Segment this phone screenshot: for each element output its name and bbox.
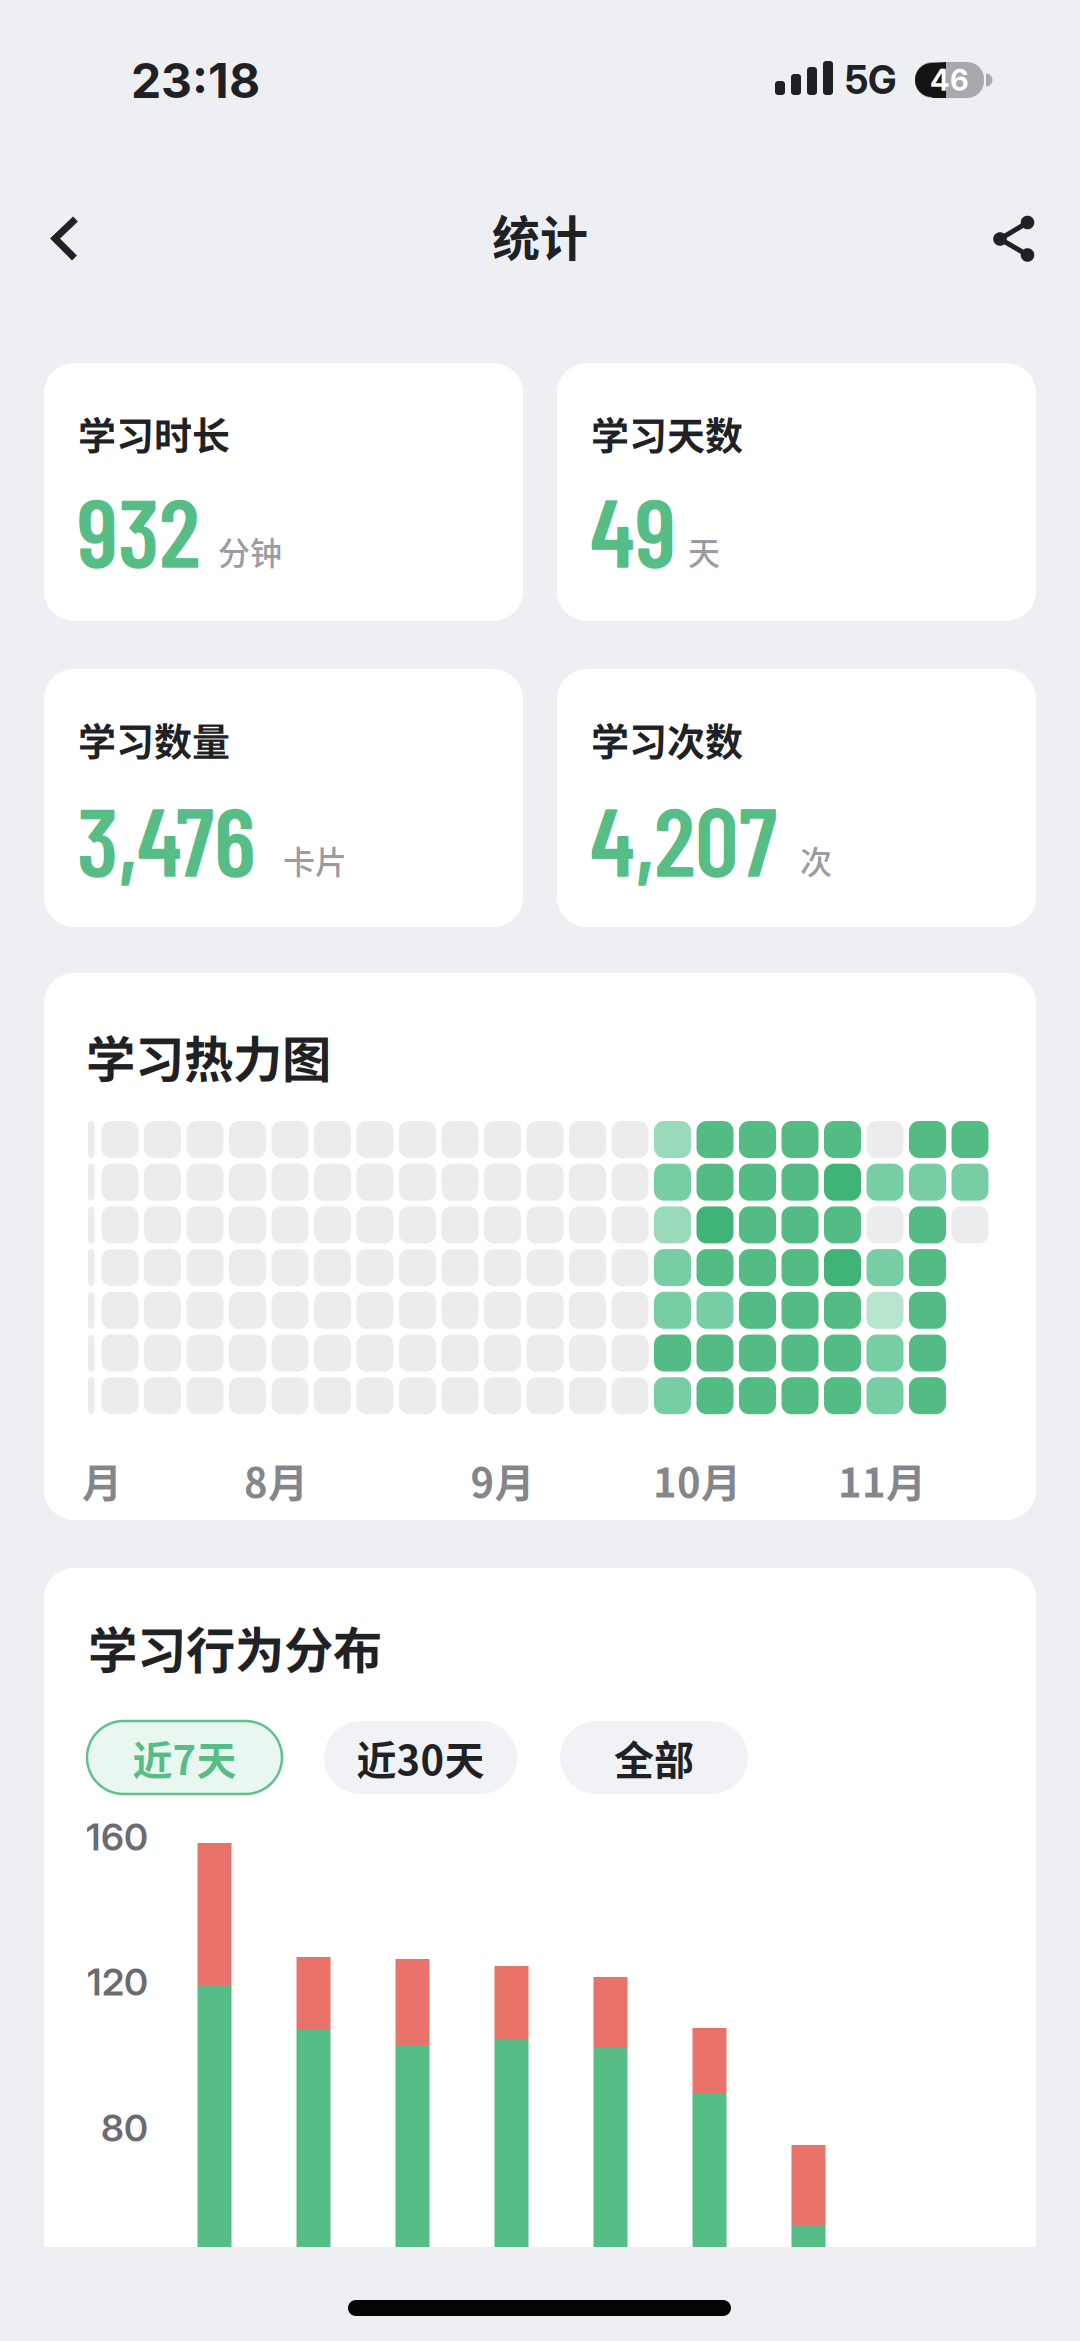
staticText: 3,476	[77, 780, 256, 896]
staticText: 学习热力图	[86, 1020, 331, 1092]
staticText: 8月	[244, 1451, 308, 1509]
button[interactable]: 全部	[560, 1721, 748, 1794]
staticText: 天	[688, 528, 720, 574]
button[interactable]: Back	[35, 199, 115, 279]
staticText: 5G	[845, 57, 897, 103]
staticText: 学习时长	[78, 405, 230, 460]
staticText: 4,207	[590, 780, 777, 896]
staticText: 23:18	[131, 51, 260, 110]
staticText: 近30天	[356, 1728, 484, 1786]
button[interactable]: 近7天	[87, 1721, 282, 1794]
staticText: 月	[82, 1451, 122, 1509]
staticText: 932	[77, 471, 200, 587]
staticText: 学习天数	[591, 405, 743, 460]
staticText: 学习数量	[78, 711, 230, 766]
staticText: 学习次数	[591, 711, 743, 766]
staticText: 统计	[492, 200, 588, 270]
staticText: 120	[87, 1959, 148, 2005]
staticText: 9月	[470, 1451, 534, 1509]
button[interactable]: 近30天	[324, 1721, 517, 1794]
staticText: 10月	[653, 1451, 741, 1509]
staticText: 160	[86, 1814, 148, 1860]
staticText: 卡片	[283, 837, 347, 883]
staticText: 11月	[838, 1451, 926, 1509]
staticText: 学习行为分布	[88, 1611, 382, 1683]
staticText: 49	[590, 471, 676, 587]
staticText: 全部	[614, 1728, 694, 1786]
staticText: 80	[101, 2105, 148, 2151]
staticText: 近7天	[132, 1728, 236, 1786]
staticText: 次	[800, 837, 832, 883]
staticText: 分钟	[218, 528, 282, 574]
button[interactable]: Share	[983, 206, 1051, 272]
staticText: 46	[930, 62, 969, 98]
